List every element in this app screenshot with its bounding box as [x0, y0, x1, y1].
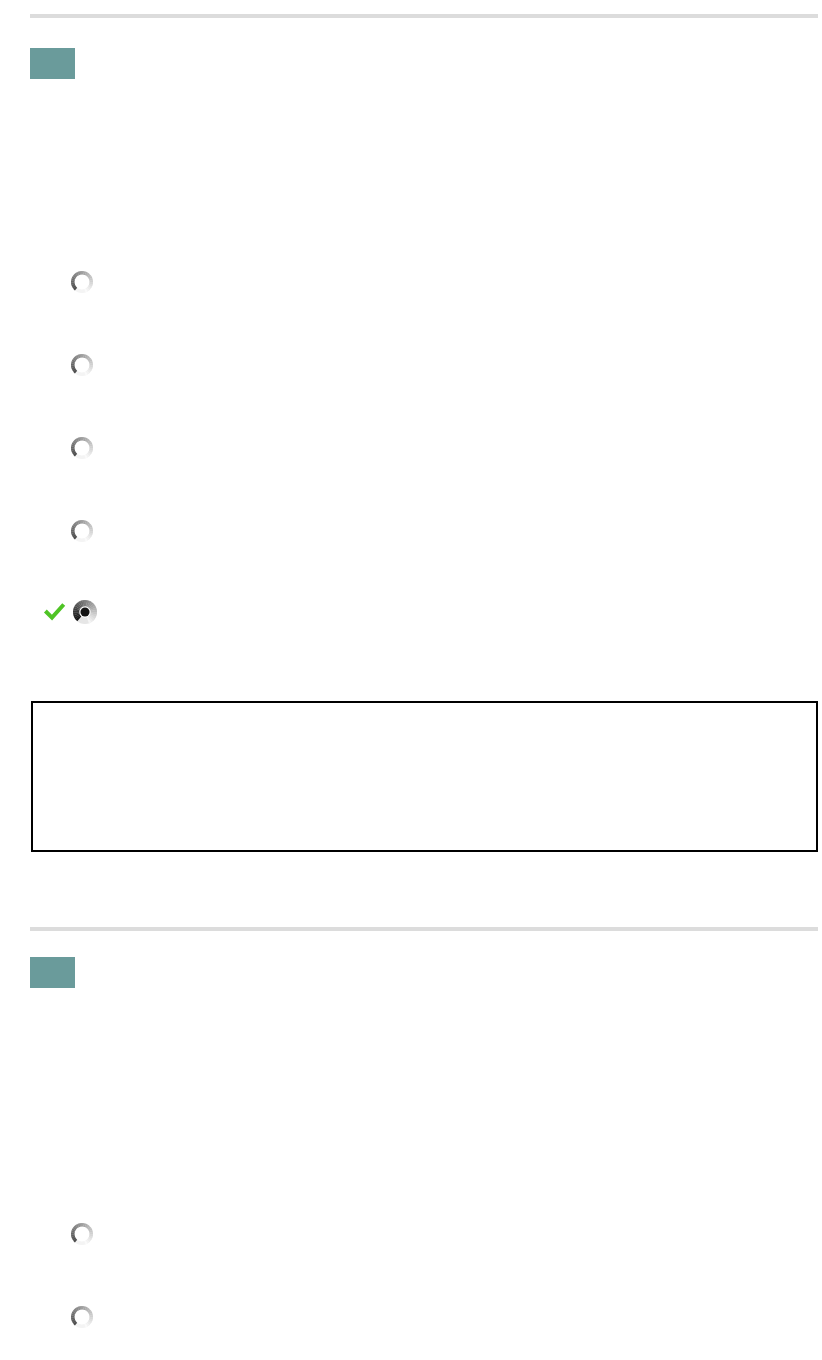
button[interactable]: Completed, loading [44, 600, 97, 624]
button[interactable]: Loading [71, 354, 93, 376]
button[interactable]: Loading [71, 437, 93, 459]
button[interactable]: Loading [71, 520, 93, 542]
button[interactable]: Loading [71, 1223, 93, 1245]
button[interactable]: Loading [71, 271, 93, 293]
button[interactable] [31, 701, 818, 852]
button[interactable]: Loading [71, 1306, 93, 1328]
